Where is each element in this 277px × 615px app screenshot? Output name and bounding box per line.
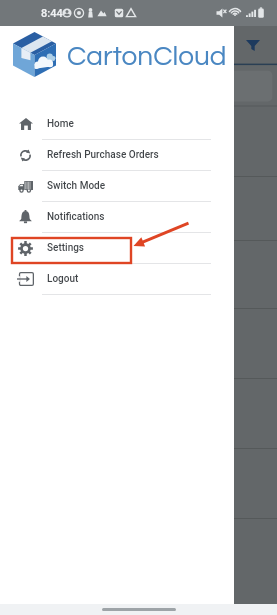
button[interactable]: Settings bbox=[0, 233, 234, 264]
button[interactable]: Filter bbox=[242, 34, 264, 56]
staticText: CartonCloud bbox=[67, 42, 227, 71]
staticText: 8:44 bbox=[41, 7, 63, 20]
staticText: Home bbox=[47, 118, 74, 130]
button[interactable]: Switch Mode bbox=[0, 171, 234, 202]
button[interactable]: Logout bbox=[0, 264, 234, 295]
staticText: Settings bbox=[47, 242, 85, 254]
staticText: Notifications bbox=[47, 211, 105, 223]
button[interactable]: Refresh Purchase Orders bbox=[0, 140, 234, 171]
button[interactable]: Notifications bbox=[0, 202, 234, 233]
staticText: Switch Mode bbox=[47, 180, 106, 192]
button[interactable]: Home bbox=[0, 109, 234, 140]
staticText: Logout bbox=[47, 273, 79, 285]
staticText: Refresh Purchase Orders bbox=[47, 149, 159, 161]
